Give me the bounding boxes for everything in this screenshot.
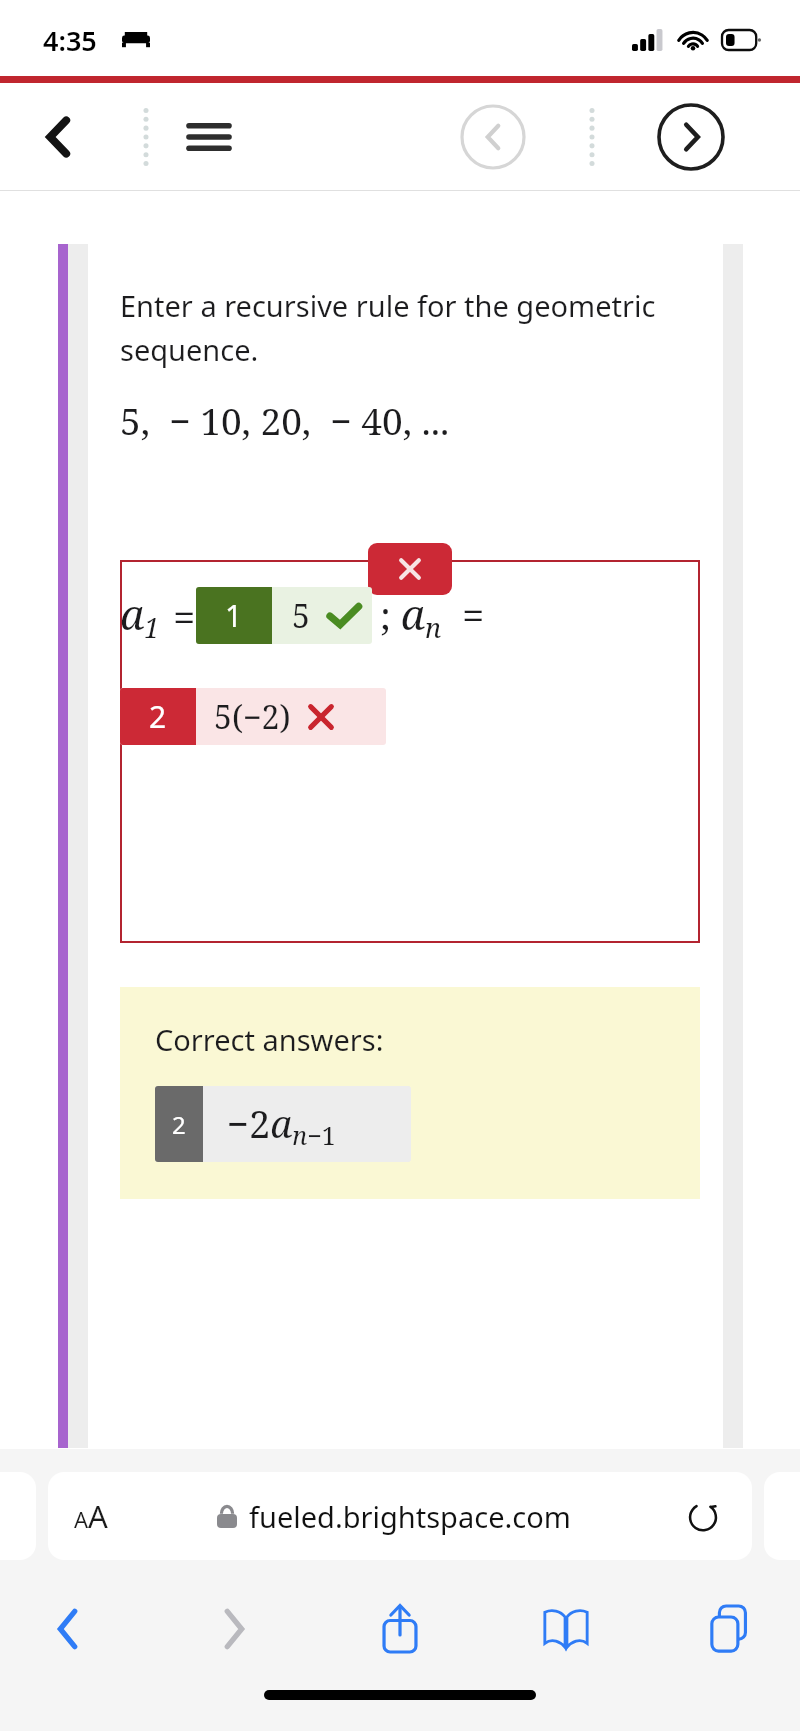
button[interactable]: Share xyxy=(362,1591,438,1667)
staticText: a1 xyxy=(120,585,160,646)
button[interactable]: Bookmarks xyxy=(528,1591,604,1667)
staticText: fueled.brightspace.com xyxy=(249,1497,571,1536)
staticText: 1 xyxy=(225,595,243,636)
button[interactable]: Previous xyxy=(458,102,528,172)
staticText: 2 xyxy=(149,696,167,737)
staticText: Correct answers: xyxy=(155,1020,384,1059)
button[interactable]: 2 xyxy=(155,1086,411,1162)
staticText: ; an = xyxy=(380,585,485,646)
button[interactable]: Back xyxy=(30,1591,106,1667)
button[interactable]: Reload xyxy=(680,1493,726,1539)
button[interactable]: Tabs xyxy=(694,1591,770,1667)
button[interactable]: Forward xyxy=(196,1591,272,1667)
button[interactable]: Back xyxy=(30,108,88,166)
staticText: = xyxy=(173,589,196,643)
button[interactable]: Menu xyxy=(178,106,240,168)
staticText: 5(−2) xyxy=(214,695,291,739)
staticText: −2an−1 xyxy=(227,1097,336,1152)
staticText: Enter a recursive rule for the geometric… xyxy=(120,286,700,369)
button[interactable]: AA xyxy=(48,1472,752,1560)
staticText: 5, − 10, 20, − 40, ... xyxy=(120,395,450,445)
staticText: 4:35 xyxy=(43,22,97,59)
button[interactable]: 1 xyxy=(196,587,372,644)
button[interactable]: Next xyxy=(654,100,728,174)
staticText: 2 xyxy=(172,1108,186,1141)
staticText: AA xyxy=(74,1495,108,1537)
button[interactable]: 2 xyxy=(120,688,386,745)
staticText: 5 xyxy=(292,594,310,638)
